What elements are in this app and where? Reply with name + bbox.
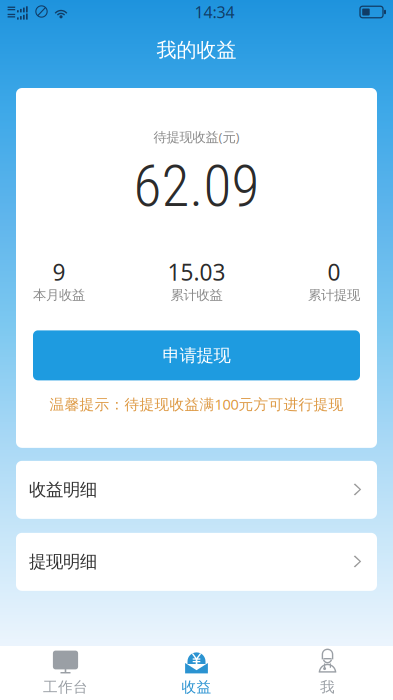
staticText: 收益明细 [29, 479, 97, 500]
staticText: 工作台 [43, 678, 88, 696]
staticText: 14:34 [194, 1, 234, 23]
staticText: 9 [52, 257, 65, 287]
staticText: 我的收益 [156, 38, 236, 62]
staticText: 提现明细 [29, 551, 97, 572]
staticText: 温馨提示：待提现收益满100元方可进行提现 [49, 394, 343, 414]
staticText: 收益 [181, 678, 211, 696]
staticText: 申请提现 [162, 345, 230, 366]
button[interactable]: 提现明细 [16, 533, 377, 591]
staticText: 15.03 [167, 257, 225, 287]
button[interactable]: 申请提现 [33, 330, 360, 380]
button[interactable]: 收益明细 [16, 461, 377, 519]
button[interactable]: 工作台 [0, 650, 131, 696]
staticText: 0 [327, 257, 340, 287]
button[interactable]: 我 [262, 650, 393, 696]
staticText: 本月收益 [33, 287, 85, 303]
button[interactable]: 收益 [131, 650, 262, 696]
staticText: 待提现收益(元) [153, 128, 239, 146]
staticText: 累计提现 [308, 287, 360, 303]
staticText: 我 [320, 678, 335, 696]
staticText: 62.09 [133, 153, 259, 220]
staticText: 累计收益 [170, 287, 222, 303]
